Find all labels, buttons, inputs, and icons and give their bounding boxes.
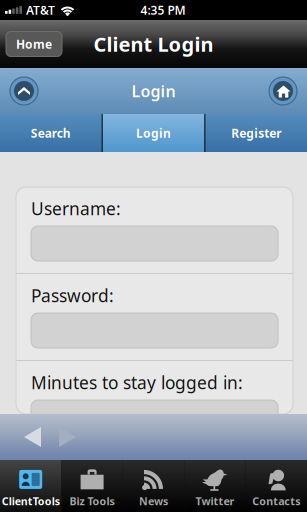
staticText: Twitter bbox=[195, 494, 234, 508]
staticText: Contacts bbox=[252, 494, 300, 508]
staticText: Login bbox=[131, 80, 175, 102]
button[interactable]: Back bbox=[15, 415, 50, 459]
staticText: Home bbox=[16, 36, 52, 52]
staticText: ClientTools bbox=[2, 494, 60, 508]
staticText: News bbox=[139, 494, 168, 508]
staticText: Search bbox=[31, 125, 71, 141]
button[interactable]: Home bbox=[268, 76, 298, 106]
button[interactable]: Up bbox=[9, 76, 39, 106]
staticText: Register bbox=[231, 125, 281, 141]
button[interactable]: Forward bbox=[50, 415, 85, 459]
staticText: Minutes to stay logged in: bbox=[31, 371, 243, 394]
button[interactable]: Login bbox=[103, 114, 204, 152]
staticText: Client Login bbox=[93, 31, 213, 57]
staticText: Username: bbox=[31, 197, 121, 220]
staticText: 4:35 PM bbox=[140, 2, 185, 18]
button[interactable]: Biz Tools bbox=[61, 460, 123, 512]
button[interactable]: Twitter bbox=[184, 460, 246, 512]
staticText: Password: bbox=[31, 284, 114, 307]
staticText: Biz Tools bbox=[70, 494, 115, 508]
button[interactable]: Contacts bbox=[246, 460, 307, 512]
button[interactable]: ClientTools bbox=[0, 460, 61, 512]
button[interactable]: Search bbox=[0, 114, 102, 152]
button[interactable]: Register bbox=[205, 114, 307, 152]
button[interactable]: Home bbox=[6, 31, 62, 56]
button[interactable]: News bbox=[123, 460, 184, 512]
staticText: Login bbox=[136, 125, 171, 141]
staticText: AT&T bbox=[26, 2, 55, 18]
